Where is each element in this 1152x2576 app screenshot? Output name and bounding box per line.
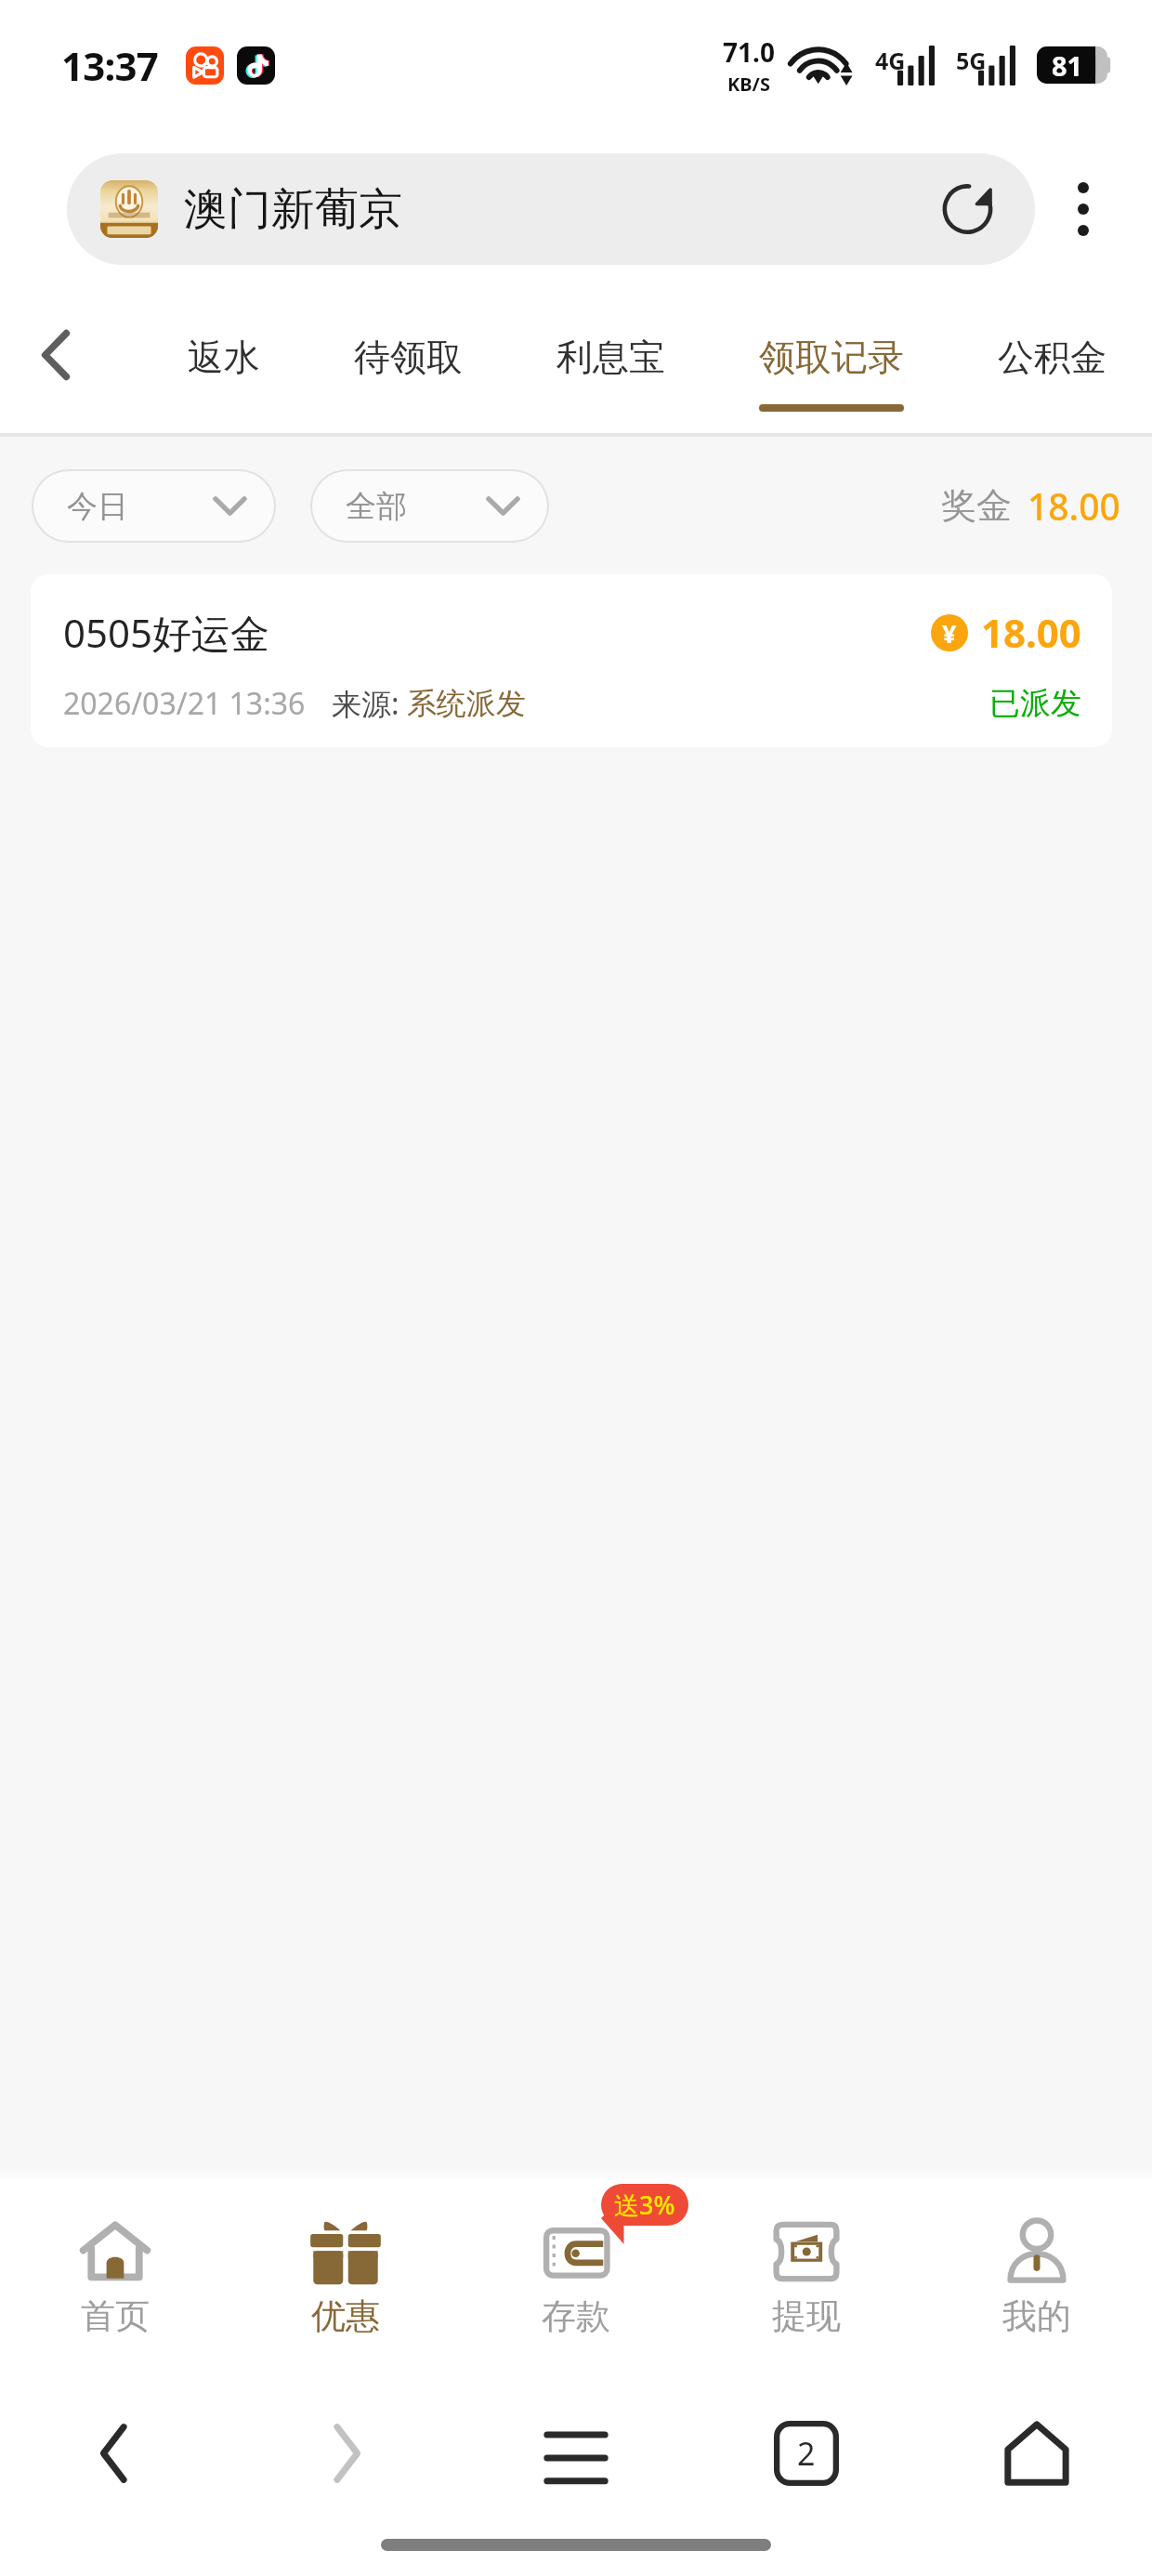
staticText: 0505好运金 [63,606,270,659]
button[interactable]: Tabs [691,2379,922,2528]
staticText: 公积金 [998,335,1106,380]
staticText: 已派发 [989,684,1081,723]
staticText: 领取记录 [759,335,904,380]
staticText: 利息宝 [556,335,665,380]
button[interactable]: Home [922,2379,1152,2528]
button[interactable]: 优惠 [230,2179,461,2379]
staticText: 提现 [772,2294,841,2338]
staticText: 存款 [542,2294,610,2338]
button[interactable]: Back [0,2379,230,2528]
button[interactable]: Forward [230,2379,461,2528]
staticText: 18.00 [981,606,1081,659]
staticText: KB/S [727,72,770,97]
staticText: ¥ [942,616,957,651]
button[interactable]: Refresh [935,174,1005,244]
staticText: 81 [1052,47,1083,84]
button[interactable]: 全部 [312,471,547,541]
staticText: 我的 [1002,2294,1071,2338]
button[interactable]: More options [1035,153,1132,265]
staticText: 来源: [332,683,407,724]
button[interactable]: 首页 [0,2179,230,2379]
staticText: 澳门新葡京 [184,182,402,237]
staticText: 送3% [614,2188,675,2222]
staticText: 系统派发 [407,685,526,722]
button[interactable]: Back [0,299,104,433]
staticText: 奖金 [941,483,1012,528]
button[interactable]: 公积金 [998,299,1106,412]
staticText: 今日 [67,487,128,526]
button[interactable]: 领取记录 [759,299,904,412]
button[interactable]: 送3% [461,2179,691,2379]
staticText: 优惠 [311,2294,380,2338]
button[interactable]: 我的 [922,2179,1152,2379]
staticText: 18.00 [1028,481,1120,531]
staticText: 首页 [81,2294,150,2338]
staticText: 2026/03/21 13:36 [63,683,306,724]
button[interactable]: 0505好运金 [31,574,1112,747]
staticText: 4G [875,45,906,76]
staticText: 5G [956,45,987,76]
button[interactable]: 返水 [188,299,260,412]
staticText: 返水 [188,335,260,380]
button[interactable]: 澳门新葡京 [67,153,1035,265]
button[interactable]: 提现 [691,2179,922,2379]
button[interactable]: 今日 [33,471,274,541]
button[interactable]: 利息宝 [556,299,665,412]
button[interactable]: Menu [461,2379,691,2528]
staticText: 待领取 [354,335,463,380]
staticText: 13:37 [61,39,158,92]
button[interactable]: 待领取 [354,299,463,412]
staticText: 71.0 [723,34,775,70]
staticText: 2 [797,2432,816,2475]
staticText: 全部 [346,487,407,526]
